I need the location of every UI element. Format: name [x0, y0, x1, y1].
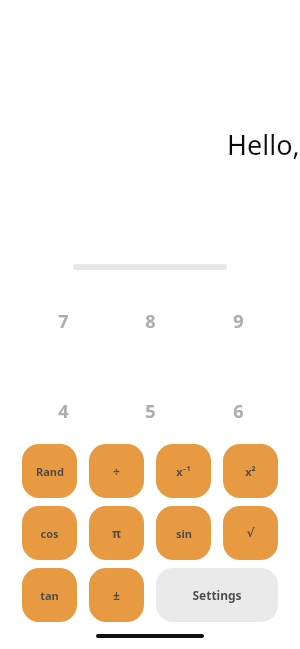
- button[interactable]: cos: [22, 506, 77, 560]
- staticText: 1: [58, 489, 69, 514]
- button[interactable]: 9: [208, 301, 268, 341]
- staticText: 6: [233, 399, 244, 424]
- staticText: tan: [40, 588, 59, 603]
- button[interactable]: 6: [208, 391, 268, 431]
- button[interactable]: ±: [89, 568, 144, 622]
- staticText: 8: [145, 309, 156, 334]
- button[interactable]: x²: [223, 444, 278, 498]
- staticText: ÷: [113, 463, 120, 479]
- staticText: π: [112, 525, 121, 541]
- button[interactable]: 5: [120, 391, 180, 431]
- staticText: Settings: [192, 587, 242, 603]
- button[interactable]: √: [223, 506, 278, 560]
- staticText: 4: [58, 399, 69, 424]
- button[interactable]: x⁻¹: [156, 444, 211, 498]
- staticText: 9: [233, 309, 244, 334]
- button[interactable]: 2: [120, 481, 180, 521]
- button[interactable]: sin: [156, 506, 211, 560]
- button[interactable]: 8: [120, 301, 180, 341]
- staticText: 7: [58, 309, 69, 334]
- staticText: x²: [245, 464, 256, 479]
- staticText: 3: [233, 489, 244, 514]
- button[interactable]: 4: [33, 391, 93, 431]
- staticText: Hello,: [227, 126, 300, 163]
- button[interactable]: tan: [22, 568, 77, 622]
- staticText: x⁻¹: [176, 464, 191, 479]
- staticText: ±: [113, 587, 120, 603]
- staticText: 5: [145, 399, 156, 424]
- button[interactable]: 7: [33, 301, 93, 341]
- button[interactable]: 3: [208, 481, 268, 521]
- button[interactable]: ÷: [89, 444, 144, 498]
- button[interactable]: Rand: [22, 444, 77, 498]
- staticText: √: [246, 526, 255, 540]
- button[interactable]: π: [89, 506, 144, 560]
- button[interactable]: 1: [33, 481, 93, 521]
- staticText: Rand: [36, 464, 64, 479]
- button[interactable]: Settings: [156, 568, 278, 622]
- staticText: sin: [176, 526, 192, 541]
- staticText: cos: [40, 526, 59, 541]
